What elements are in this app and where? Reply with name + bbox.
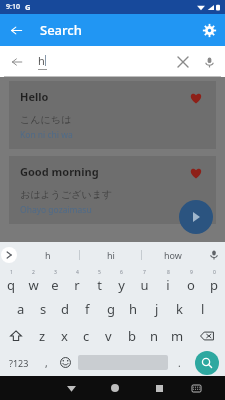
button[interactable]: h bbox=[17, 242, 79, 268]
staticText: j bbox=[155, 300, 159, 318]
staticText: , bbox=[45, 356, 48, 370]
staticText: i bbox=[166, 276, 170, 294]
button[interactable]: 8 bbox=[156, 268, 179, 295]
staticText: r bbox=[74, 276, 80, 294]
staticText: z bbox=[39, 327, 46, 345]
button[interactable]: Good morning bbox=[9, 156, 216, 224]
staticText: G bbox=[25, 2, 31, 12]
staticText: 2 bbox=[32, 269, 35, 276]
button[interactable]: 0 bbox=[202, 268, 225, 295]
staticText: d bbox=[61, 300, 69, 318]
staticText: w bbox=[28, 276, 39, 294]
button[interactable]: Hello bbox=[9, 81, 216, 149]
button[interactable]: l bbox=[191, 295, 214, 322]
staticText: 1 bbox=[10, 269, 13, 276]
staticText: k bbox=[176, 300, 183, 318]
staticText: おはようございます bbox=[20, 188, 113, 201]
button[interactable]: how bbox=[142, 242, 203, 268]
staticText: 5 bbox=[98, 269, 101, 276]
button[interactable]: Back bbox=[0, 14, 32, 46]
staticText: . bbox=[178, 356, 181, 370]
button[interactable]: ?123 bbox=[0, 349, 37, 376]
staticText: こんにちは bbox=[20, 113, 72, 126]
button[interactable]: 7 bbox=[133, 268, 156, 295]
button[interactable]: g bbox=[99, 295, 122, 322]
button[interactable]: Backspace bbox=[189, 322, 225, 349]
staticText: 8 bbox=[167, 269, 170, 276]
staticText: Ohayo gozaimasu bbox=[20, 204, 92, 216]
staticText: 6 bbox=[120, 269, 123, 276]
button[interactable]: s bbox=[32, 295, 54, 322]
button[interactable]: Recents bbox=[137, 376, 181, 400]
button[interactable]: Favorite bbox=[187, 89, 205, 107]
button[interactable]: Voice search bbox=[197, 50, 221, 74]
button[interactable]: Settings bbox=[193, 14, 225, 46]
staticText: o bbox=[187, 276, 195, 294]
button[interactable]: Emoji bbox=[55, 349, 76, 376]
button[interactable]: 2 bbox=[22, 268, 44, 295]
staticText: 4 bbox=[76, 269, 79, 276]
button[interactable]: Hide keyboard bbox=[49, 376, 93, 400]
staticText: Search bbox=[40, 21, 82, 39]
button[interactable]: hi bbox=[80, 242, 141, 268]
button[interactable]: 1 bbox=[0, 268, 22, 295]
button[interactable]: Play bbox=[179, 200, 213, 234]
staticText: t bbox=[97, 276, 102, 294]
staticText: l bbox=[201, 300, 205, 318]
button[interactable]: a bbox=[10, 295, 32, 322]
button[interactable]: x bbox=[53, 322, 75, 349]
button[interactable]: Favorite bbox=[187, 164, 205, 182]
staticText: 0 bbox=[213, 269, 216, 276]
button[interactable]: Shift bbox=[0, 322, 31, 349]
staticText: s bbox=[40, 300, 47, 318]
button[interactable]: c bbox=[75, 322, 97, 349]
staticText: Good morning bbox=[20, 164, 99, 179]
staticText: h bbox=[45, 249, 51, 261]
button[interactable]: Home bbox=[93, 376, 137, 400]
staticText: u bbox=[140, 276, 149, 294]
staticText: n bbox=[150, 327, 159, 345]
staticText: 9:10 bbox=[6, 2, 20, 12]
button[interactable]: 5 bbox=[88, 268, 110, 295]
staticText: 9 bbox=[190, 269, 193, 276]
staticText: Hello bbox=[20, 89, 49, 104]
button[interactable]: b bbox=[120, 322, 143, 349]
button[interactable]: n bbox=[143, 322, 166, 349]
staticText: y bbox=[118, 276, 125, 294]
staticText: m bbox=[171, 327, 184, 345]
button[interactable]: Clear bbox=[171, 50, 195, 74]
button[interactable]: . bbox=[170, 349, 189, 376]
button[interactable]: 6 bbox=[110, 268, 133, 295]
staticText: a bbox=[17, 300, 25, 318]
button[interactable]: Back bbox=[4, 49, 30, 75]
staticText: hi bbox=[107, 249, 115, 261]
button[interactable]: m bbox=[166, 322, 189, 349]
staticText: how bbox=[164, 249, 182, 261]
button[interactable]: 4 bbox=[66, 268, 88, 295]
staticText: h bbox=[38, 53, 45, 68]
staticText: g bbox=[107, 300, 115, 318]
button[interactable]: Switch keyboard bbox=[181, 376, 212, 400]
staticText: c bbox=[83, 327, 90, 345]
staticText: x bbox=[61, 327, 68, 345]
button[interactable]: z bbox=[31, 322, 53, 349]
button[interactable]: Expand suggestions bbox=[1, 247, 17, 263]
button[interactable]: 9 bbox=[179, 268, 202, 295]
button[interactable]: j bbox=[145, 295, 168, 322]
staticText: b bbox=[128, 327, 136, 345]
button[interactable]: f bbox=[76, 295, 99, 322]
button[interactable]: h bbox=[122, 295, 145, 322]
staticText: ?123 bbox=[9, 357, 29, 369]
staticText: q bbox=[7, 276, 15, 294]
button[interactable]: d bbox=[54, 295, 76, 322]
staticText: v bbox=[105, 327, 112, 345]
button[interactable]: Voice input bbox=[203, 242, 225, 268]
button[interactable]: 3 bbox=[44, 268, 66, 295]
staticText: Kon ni chi wa bbox=[20, 129, 73, 141]
button[interactable]: , bbox=[37, 349, 55, 376]
button[interactable]: v bbox=[97, 322, 120, 349]
staticText: h bbox=[129, 300, 138, 318]
button[interactable]: k bbox=[168, 295, 191, 322]
button[interactable]: Search bbox=[195, 351, 219, 375]
